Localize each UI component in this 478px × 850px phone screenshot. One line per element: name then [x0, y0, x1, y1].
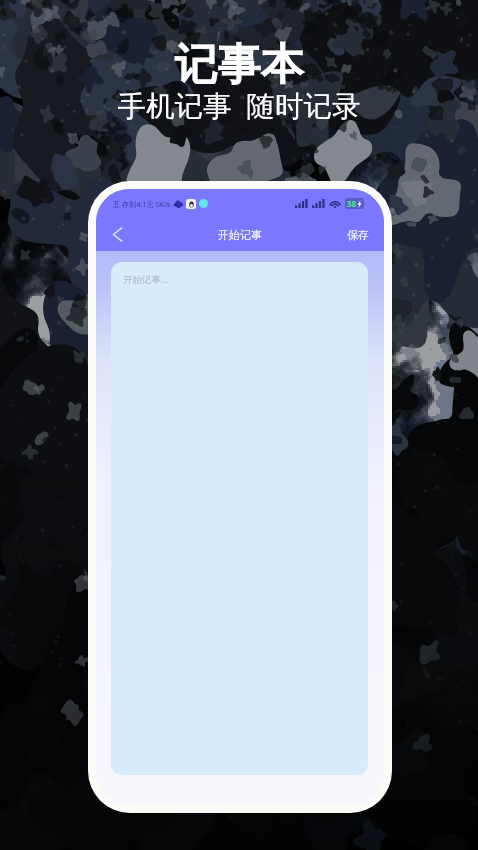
button[interactable]: 保存 [333, 218, 384, 251]
staticText: 五 存刻4.1元 0K/s [113, 199, 171, 209]
staticText: 手机记事 随时记录 [0, 86, 478, 125]
staticText: 38 [347, 198, 357, 209]
staticText: 开始记事... [123, 273, 169, 286]
staticText: 开始记事 [218, 228, 262, 242]
button[interactable]: 返回 [96, 218, 139, 251]
staticText: 保存 [347, 228, 369, 242]
staticText: 记事本 [0, 38, 478, 92]
